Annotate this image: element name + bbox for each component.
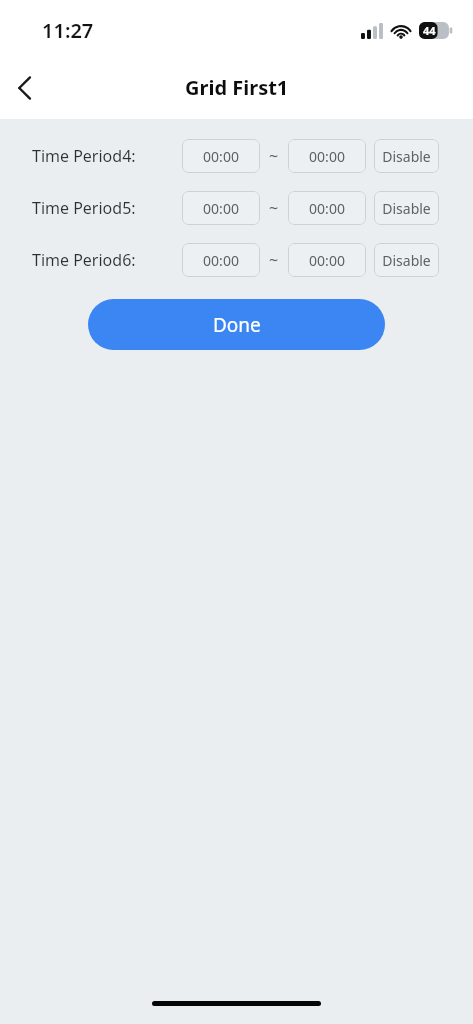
staticText: 11:27: [42, 17, 94, 44]
button[interactable]: 00:00: [182, 139, 260, 173]
button[interactable]: 00:00: [288, 191, 366, 225]
staticText: Time Period4:: [32, 145, 136, 167]
button[interactable]: Disable: [374, 139, 439, 173]
staticText: Grid First1: [185, 74, 289, 101]
staticText: Disable: [382, 147, 431, 166]
button[interactable]: Disable: [374, 191, 439, 225]
staticText: ~: [269, 197, 279, 219]
button[interactable]: 00:00: [182, 191, 260, 225]
staticText: Disable: [382, 199, 431, 218]
staticText: 00:00: [203, 147, 239, 166]
button[interactable]: Done: [88, 299, 385, 350]
staticText: 00:00: [309, 199, 345, 218]
staticText: Done: [213, 312, 261, 338]
button[interactable]: Back: [0, 64, 48, 112]
staticText: Disable: [382, 251, 431, 270]
staticText: ~: [269, 145, 279, 167]
button[interactable]: Disable: [374, 243, 439, 277]
staticText: 44: [423, 23, 436, 38]
button[interactable]: 00:00: [182, 243, 260, 277]
button[interactable]: 00:00: [288, 243, 366, 277]
staticText: 00:00: [309, 251, 345, 270]
staticText: 00:00: [203, 199, 239, 218]
staticText: ~: [269, 249, 279, 271]
staticText: 00:00: [309, 147, 345, 166]
button[interactable]: 00:00: [288, 139, 366, 173]
staticText: Time Period5:: [32, 197, 136, 219]
staticText: Time Period6:: [32, 249, 136, 271]
staticText: 00:00: [203, 251, 239, 270]
